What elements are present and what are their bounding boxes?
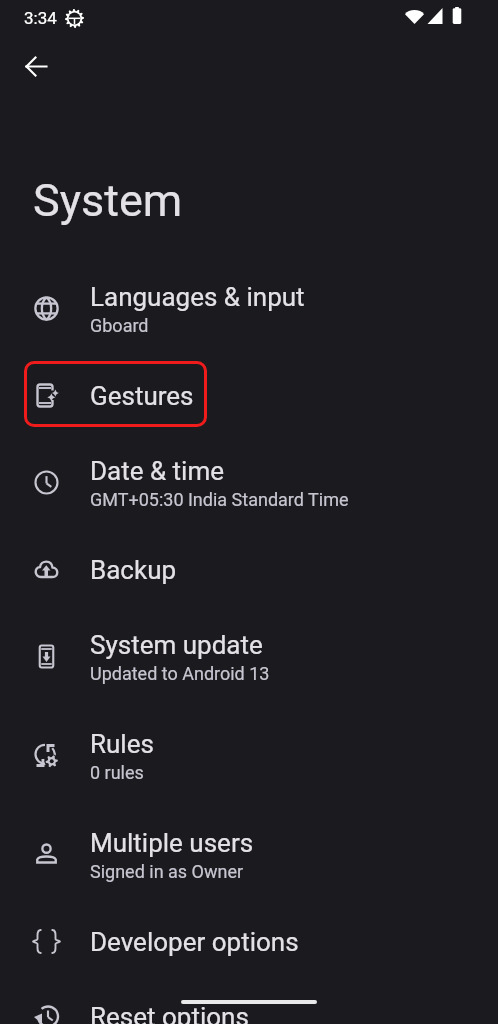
staticText: System [33, 174, 183, 227]
button[interactable]: Developer options [0, 904, 498, 979]
staticText: Date & time [90, 456, 224, 486]
staticText: 0 rules [90, 762, 144, 783]
button[interactable]: Reset options [0, 979, 498, 1024]
staticText: Gestures [90, 381, 194, 411]
button[interactable]: Rules [0, 706, 498, 805]
other: Battery [452, 7, 462, 24]
other: Mobile signal [427, 7, 443, 24]
button[interactable]: Gestures [0, 358, 498, 433]
staticText: 3:34 [24, 8, 57, 28]
button[interactable]: Date & time [0, 433, 498, 532]
button[interactable]: Back [12, 42, 60, 90]
staticText: Reset options [90, 1002, 249, 1024]
staticText: Gboard [90, 315, 149, 336]
staticText: System update [90, 630, 263, 660]
staticText: Signed in as Owner [90, 861, 244, 882]
button[interactable]: Backup [0, 532, 498, 607]
button[interactable]: Languages & input [0, 259, 498, 358]
other: Wi-Fi signal [405, 7, 424, 24]
button[interactable]: Multiple users [0, 805, 498, 904]
staticText: Rules [90, 729, 154, 759]
staticText: Multiple users [90, 828, 254, 858]
button[interactable]: System update [0, 607, 498, 706]
staticText: Backup [90, 555, 177, 585]
staticText: Developer options [90, 927, 299, 957]
staticText: GMT+05:30 India Standard Time [90, 489, 349, 510]
staticText: Languages & input [90, 282, 305, 312]
staticText: Updated to Android 13 [90, 663, 270, 684]
